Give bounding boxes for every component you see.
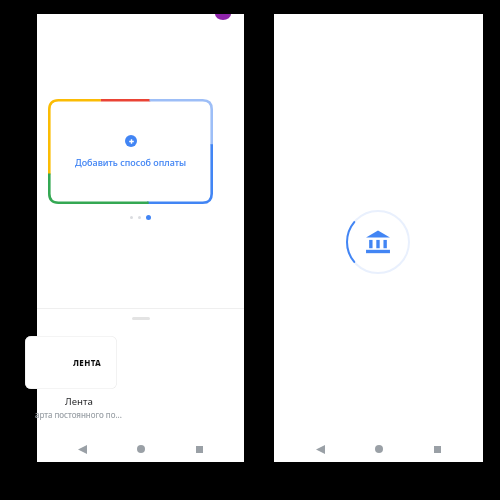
- button[interactable]: Recents: [424, 436, 450, 462]
- staticText: арта постоянного по...: [35, 409, 122, 420]
- button[interactable]: Home: [366, 436, 392, 462]
- other: Bank account loading: [346, 210, 410, 274]
- button[interactable]: Back: [69, 436, 95, 462]
- button[interactable]: Home: [128, 436, 154, 462]
- button[interactable]: Recents: [186, 436, 212, 462]
- button[interactable]: Back: [307, 436, 333, 462]
- staticText: ЛЕНТА: [73, 357, 102, 368]
- button[interactable]: ЛЕНТА: [25, 336, 117, 389]
- button[interactable]: Добавить способ оплаты: [48, 99, 213, 204]
- staticText: Лента: [65, 395, 93, 408]
- staticText: Добавить способ оплаты: [75, 156, 187, 168]
